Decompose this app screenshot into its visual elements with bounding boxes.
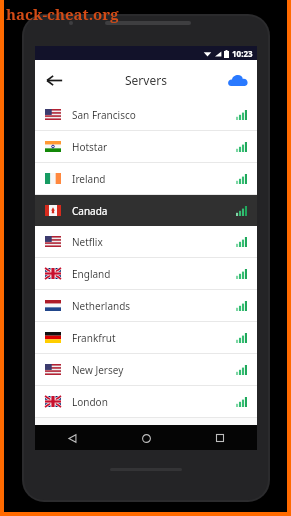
staticText: Hotstar [72,140,108,154]
staticText: New Jersey [72,363,124,377]
staticText: Canada [72,204,108,218]
button[interactable]: Netflix [35,226,257,257]
staticText: Frankfrut [72,331,116,345]
button[interactable]: San Francisco [35,99,257,130]
button[interactable]: Frankfrut [35,322,257,353]
staticText: London [72,395,108,409]
button[interactable]: Home [135,427,157,449]
button[interactable]: Cloud [225,67,251,93]
button[interactable]: Back [61,427,83,449]
staticText: Netflix [72,235,103,249]
staticText: England [72,267,111,281]
staticText: Netherlands [72,299,131,313]
button[interactable]: Canada [35,195,257,226]
staticText: hack-cheat.org [6,4,119,24]
button[interactable]: Recents [209,427,231,449]
button[interactable]: Back [39,65,69,95]
staticText: Servers [125,72,167,88]
button[interactable]: England [35,258,257,289]
button[interactable]: London [35,386,257,417]
staticText: Ireland [72,172,106,186]
staticText: 10:23 [232,48,253,59]
button[interactable]: Netherlands [35,290,257,321]
button[interactable]: Ireland [35,163,257,194]
button[interactable]: New Jersey [35,354,257,385]
staticText: San Francisco [72,108,136,122]
button[interactable]: Hotstar [35,131,257,162]
